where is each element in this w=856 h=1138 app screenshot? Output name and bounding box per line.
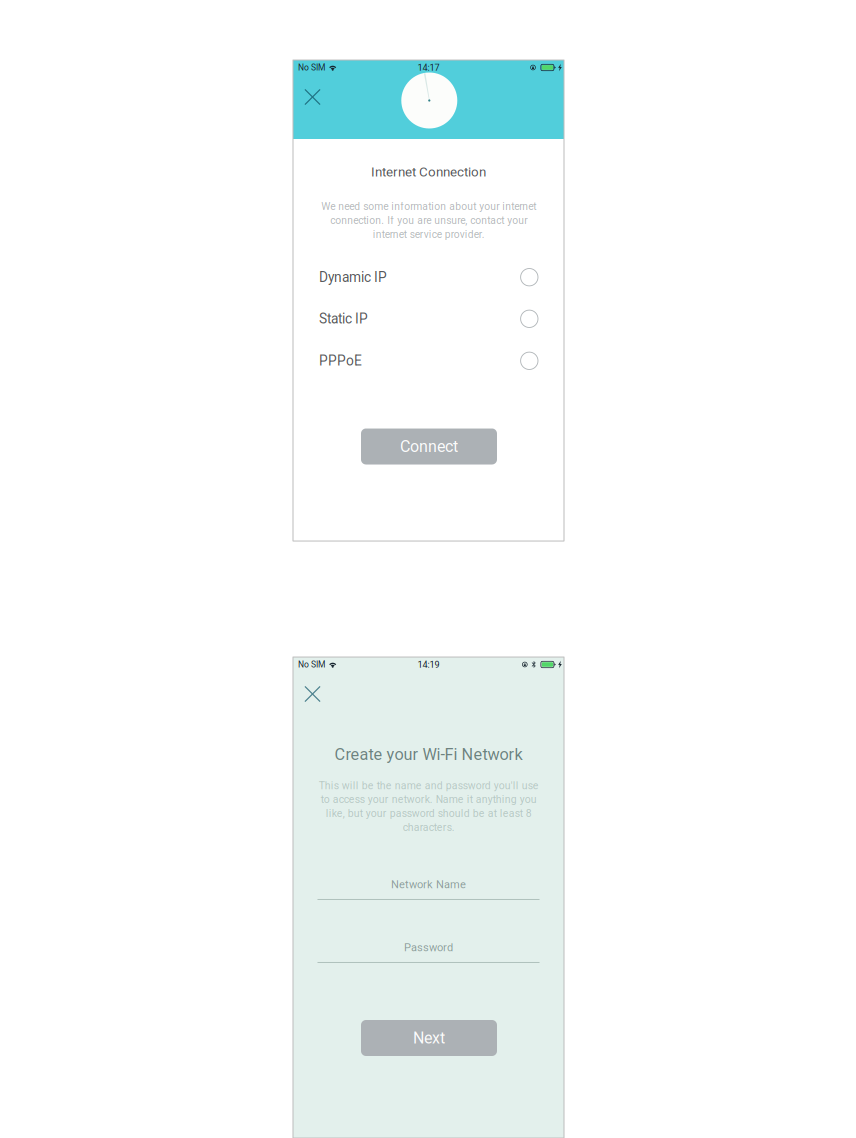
button[interactable]: Connect [361,428,497,464]
staticText: Dynamic IP [319,269,387,285]
button[interactable]: Close [295,677,329,711]
staticText: Connect [400,437,458,456]
button[interactable]: Close [295,80,329,114]
staticText: Next [413,1029,445,1047]
staticText: Password [404,941,453,954]
staticText: 14:17 [417,62,439,73]
staticText: Create your Wi-Fi Network [334,745,522,764]
staticText: PPPoE [319,353,362,369]
staticText: No SIM [298,62,325,72]
button[interactable]: Password [317,941,539,963]
staticText: Network Name [391,878,466,891]
button[interactable]: Dynamic IP [293,257,564,298]
button[interactable]: Static IP [293,298,564,339]
button[interactable]: PPPoE [293,340,564,381]
staticText: 14:19 [417,659,439,670]
staticText: Internet Connection [371,164,486,180]
staticText: No SIM [298,659,325,669]
staticText: We need some information about your inte… [321,200,536,240]
staticText: Static IP [319,311,368,327]
staticText: This will be the name and password you'l… [318,779,538,834]
button[interactable]: Network Name [317,878,539,900]
button[interactable]: Next [361,1020,497,1056]
